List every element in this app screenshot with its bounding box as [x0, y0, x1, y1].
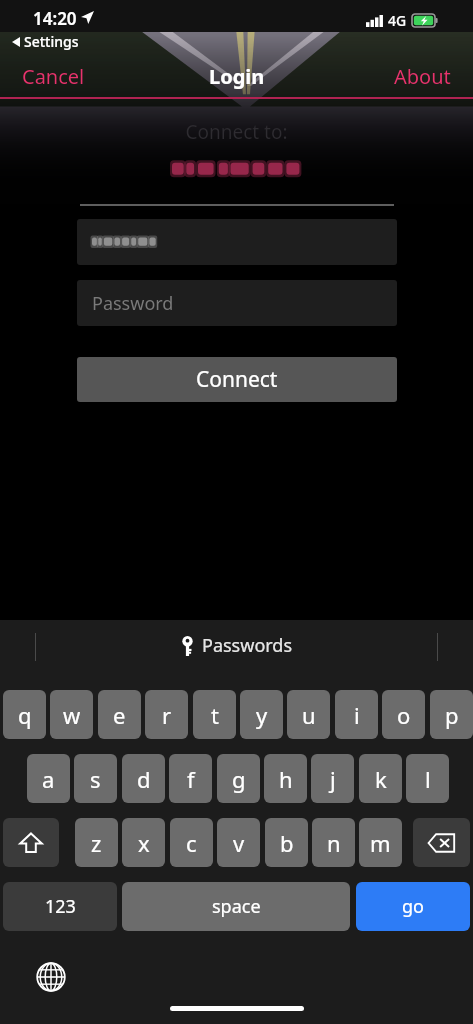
- staticText: Settings: [24, 32, 79, 51]
- button[interactable]: c: [170, 818, 213, 867]
- button[interactable]: u: [287, 690, 330, 739]
- button[interactable]: p: [430, 690, 473, 739]
- button[interactable]: Settings: [10, 31, 81, 52]
- staticText: r: [162, 700, 172, 730]
- button[interactable]: o: [382, 690, 425, 739]
- staticText: b: [280, 828, 294, 858]
- button[interactable]: Shift: [3, 818, 59, 867]
- button[interactable]: b: [265, 818, 308, 867]
- button[interactable]: w: [50, 690, 93, 739]
- button[interactable]: Connect: [77, 357, 397, 402]
- staticText: h: [279, 764, 293, 794]
- staticText: u: [302, 700, 316, 730]
- button[interactable]: s: [74, 754, 117, 803]
- staticText: x: [138, 828, 150, 858]
- staticText: About: [394, 63, 451, 90]
- staticText: y: [256, 700, 268, 730]
- staticText: Cancel: [22, 63, 85, 90]
- button[interactable]: Backspace: [413, 818, 470, 867]
- button[interactable]: [77, 219, 397, 265]
- button[interactable]: l: [406, 754, 449, 803]
- staticText: l: [425, 764, 431, 794]
- button[interactable]: y: [240, 690, 283, 739]
- button[interactable]: d: [122, 754, 165, 803]
- staticText: 123: [45, 894, 76, 919]
- staticText: s: [90, 764, 101, 794]
- button[interactable]: x: [122, 818, 165, 867]
- button[interactable]: n: [312, 818, 355, 867]
- staticText: 14:20: [33, 7, 77, 30]
- staticText: Login: [209, 63, 265, 90]
- staticText: a: [42, 764, 55, 794]
- button[interactable]: q: [3, 690, 46, 739]
- button[interactable]: About: [386, 57, 459, 96]
- staticText: d: [137, 764, 151, 794]
- button[interactable]: a: [27, 754, 70, 803]
- staticText: 4G: [388, 11, 407, 30]
- staticText: w: [63, 700, 81, 730]
- button[interactable]: z: [75, 818, 118, 867]
- button[interactable]: e: [98, 690, 141, 739]
- staticText: Connect: [196, 365, 278, 394]
- button[interactable]: space: [122, 882, 350, 931]
- staticText: t: [211, 700, 219, 730]
- button[interactable]: j: [311, 754, 354, 803]
- button[interactable]: k: [359, 754, 402, 803]
- button[interactable]: m: [359, 818, 402, 867]
- staticText: k: [375, 764, 387, 794]
- button[interactable]: t: [193, 690, 236, 739]
- staticText: Passwords: [202, 633, 293, 658]
- staticText: f: [187, 764, 195, 794]
- staticText: space: [212, 894, 261, 919]
- button[interactable]: Change keyboard language: [30, 956, 72, 998]
- staticText: n: [327, 828, 341, 858]
- button[interactable]: h: [264, 754, 307, 803]
- button[interactable]: 123: [3, 882, 117, 931]
- staticText: z: [91, 828, 102, 858]
- button[interactable]: i: [335, 690, 378, 739]
- button[interactable]: Password: [77, 280, 397, 326]
- staticText: e: [113, 700, 126, 730]
- staticText: o: [397, 700, 411, 730]
- staticText: q: [18, 700, 32, 730]
- staticText: j: [330, 764, 336, 794]
- button[interactable]: Cancel: [14, 57, 93, 96]
- staticText: Password: [92, 291, 174, 316]
- button[interactable]: go: [356, 882, 470, 931]
- staticText: Connect to:: [185, 119, 288, 145]
- button[interactable]: r: [145, 690, 188, 739]
- staticText: g: [232, 764, 246, 794]
- staticText: v: [233, 828, 245, 858]
- button[interactable]: Passwords: [173, 628, 301, 663]
- button[interactable]: f: [169, 754, 212, 803]
- button[interactable]: v: [217, 818, 260, 867]
- staticText: p: [445, 700, 459, 730]
- staticText: go: [402, 894, 424, 919]
- button[interactable]: g: [217, 754, 260, 803]
- staticText: m: [370, 828, 391, 858]
- staticText: i: [354, 700, 360, 730]
- staticText: c: [186, 828, 197, 858]
